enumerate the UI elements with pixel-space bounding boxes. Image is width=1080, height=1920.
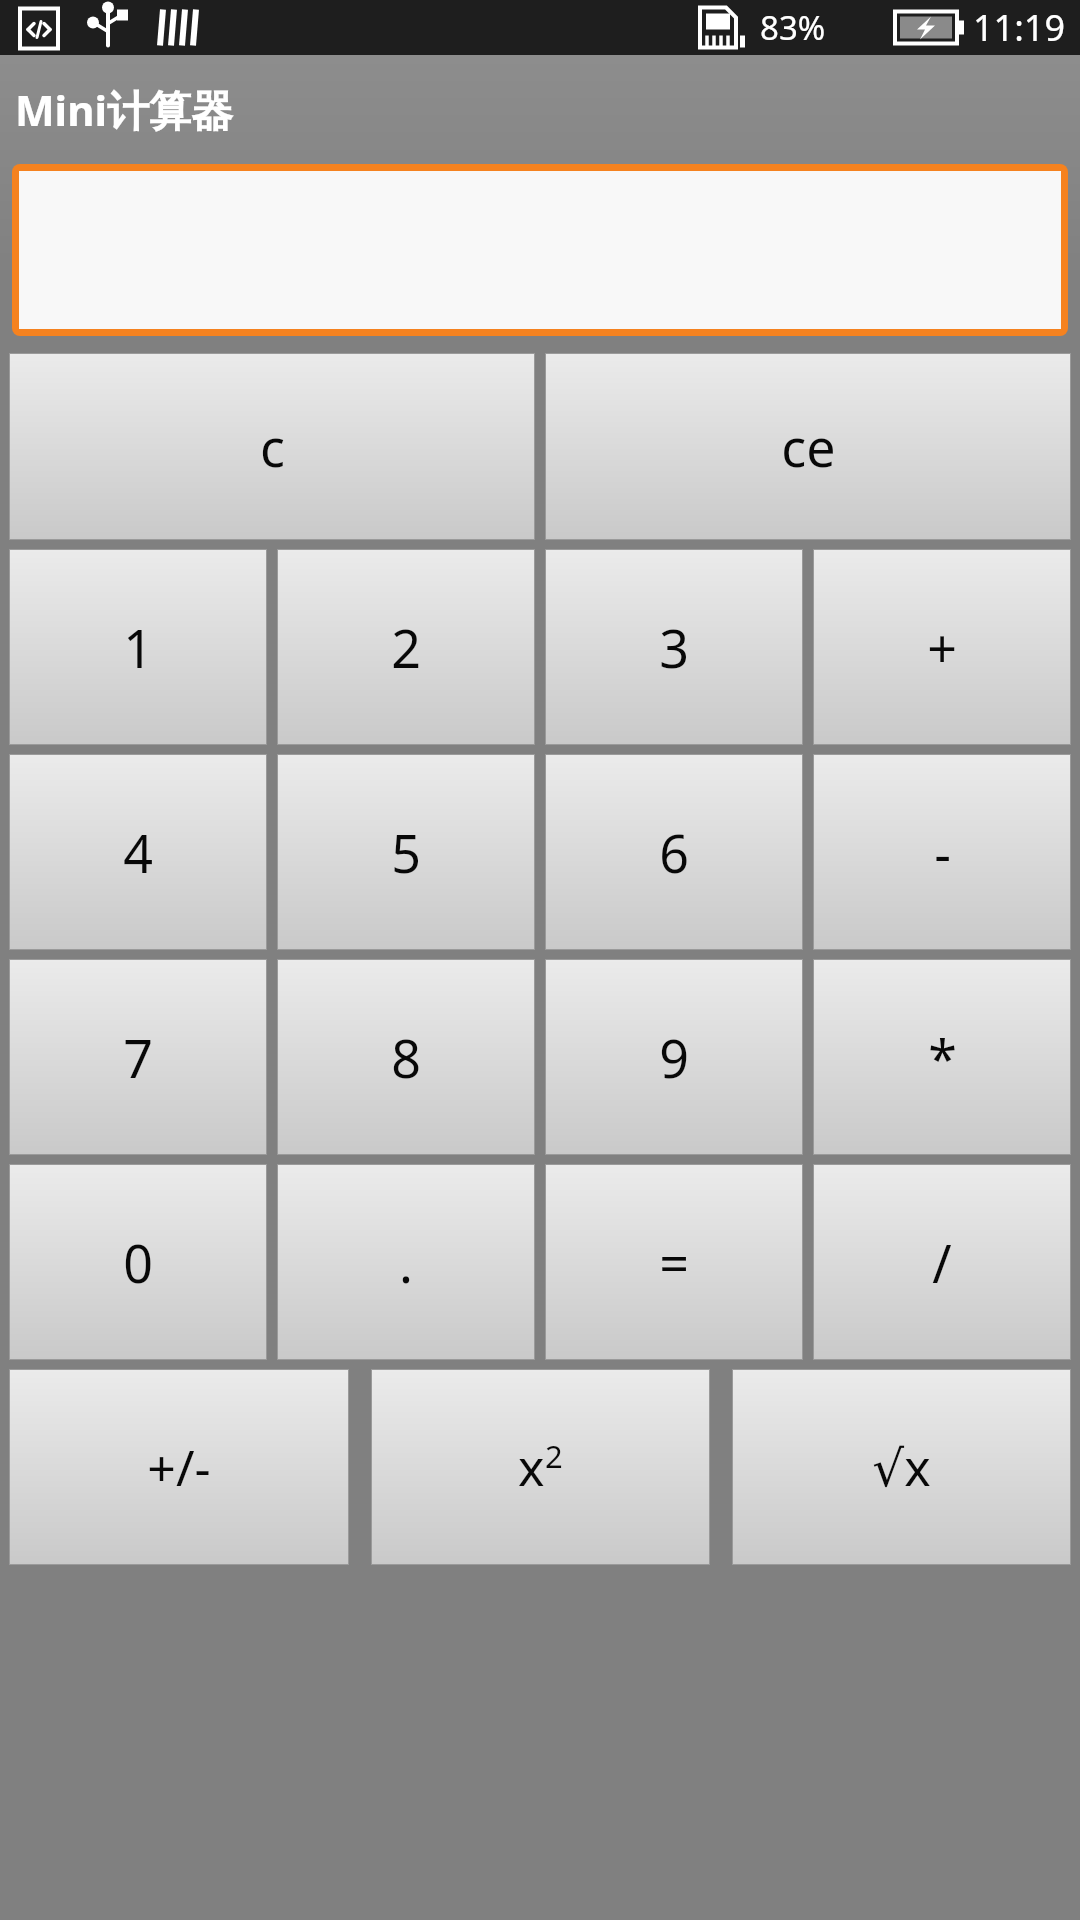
button[interactable]: √x (732, 1369, 1071, 1565)
staticText: . (399, 1227, 413, 1298)
button[interactable]: - (813, 754, 1071, 950)
staticText: + (927, 612, 957, 683)
staticText: 6 (659, 817, 689, 888)
staticText: 83% (760, 5, 826, 50)
staticText: 11:19 (973, 3, 1066, 52)
button[interactable]: + (813, 549, 1071, 745)
staticText: 5 (391, 817, 421, 888)
staticText: * (928, 1022, 957, 1093)
button[interactable]: x (371, 1369, 710, 1565)
button[interactable]: / (813, 1164, 1071, 1360)
staticText: √x (872, 1433, 931, 1501)
button[interactable]: 0 (9, 1164, 267, 1360)
staticText: +/- (147, 1433, 211, 1501)
button[interactable]: 1 (9, 549, 267, 745)
staticText: - (934, 817, 951, 888)
staticText: ce (781, 411, 836, 482)
staticText: 0 (123, 1227, 153, 1298)
button[interactable]: 9 (545, 959, 803, 1155)
staticText: 1 (123, 612, 153, 683)
staticText: 3 (659, 612, 689, 683)
staticText: 7 (123, 1022, 153, 1093)
staticText: / (932, 1227, 952, 1298)
staticText: = (659, 1227, 689, 1298)
staticText: 4 (123, 817, 153, 888)
button[interactable]: ce (545, 353, 1071, 540)
staticText: c (260, 411, 285, 482)
button[interactable]: 7 (9, 959, 267, 1155)
staticText: 2 (545, 1435, 563, 1477)
button[interactable]: 8 (277, 959, 535, 1155)
staticText: 2 (391, 612, 421, 683)
button[interactable]: 6 (545, 754, 803, 950)
button[interactable]: = (545, 1164, 803, 1360)
button[interactable]: c (9, 353, 535, 540)
button[interactable]: 4 (9, 754, 267, 950)
button[interactable]: . (277, 1164, 535, 1360)
staticText: 9 (659, 1022, 689, 1093)
button[interactable]: 3 (545, 549, 803, 745)
staticText: 8 (391, 1022, 421, 1093)
button[interactable]: 2 (277, 549, 535, 745)
button[interactable]: 5 (277, 754, 535, 950)
button[interactable]: * (813, 959, 1071, 1155)
staticText: Mini计算器 (15, 81, 234, 138)
staticText: x (518, 1433, 545, 1501)
button[interactable]: +/- (9, 1369, 349, 1565)
